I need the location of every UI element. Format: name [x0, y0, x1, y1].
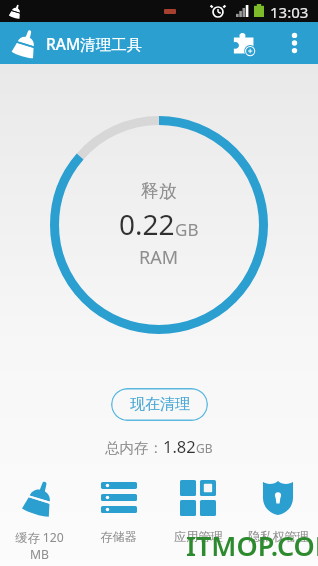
- staticText: GB: [175, 218, 199, 241]
- staticText: 总内存：: [105, 439, 163, 457]
- staticText: RAM: [139, 245, 179, 270]
- staticText: 释放: [141, 180, 177, 203]
- button[interactable]: Add plugin: [222, 23, 266, 64]
- button[interactable]: 现在清理: [111, 388, 208, 421]
- staticText: GB: [196, 440, 213, 456]
- staticText: 存储器: [100, 529, 137, 544]
- button[interactable]: Privacy: [238, 474, 318, 566]
- staticText: 0.22: [119, 205, 175, 243]
- staticText: RAM清理工具: [46, 33, 143, 54]
- staticText: 13:03: [270, 2, 309, 22]
- button[interactable]: Storage: [79, 474, 158, 566]
- staticText: 应用管理: [174, 529, 223, 544]
- staticText: 缓存 120 MB: [15, 529, 64, 562]
- staticText: 现在清理: [130, 395, 190, 414]
- staticText: 1.82: [163, 435, 196, 457]
- staticText: ITMOP.COM: [186, 527, 318, 564]
- button[interactable]: App manager: [158, 474, 238, 566]
- staticText: 隐私权管理: [248, 529, 309, 544]
- button[interactable]: Cache 120 MB: [0, 474, 79, 566]
- button[interactable]: More options: [275, 22, 312, 64]
